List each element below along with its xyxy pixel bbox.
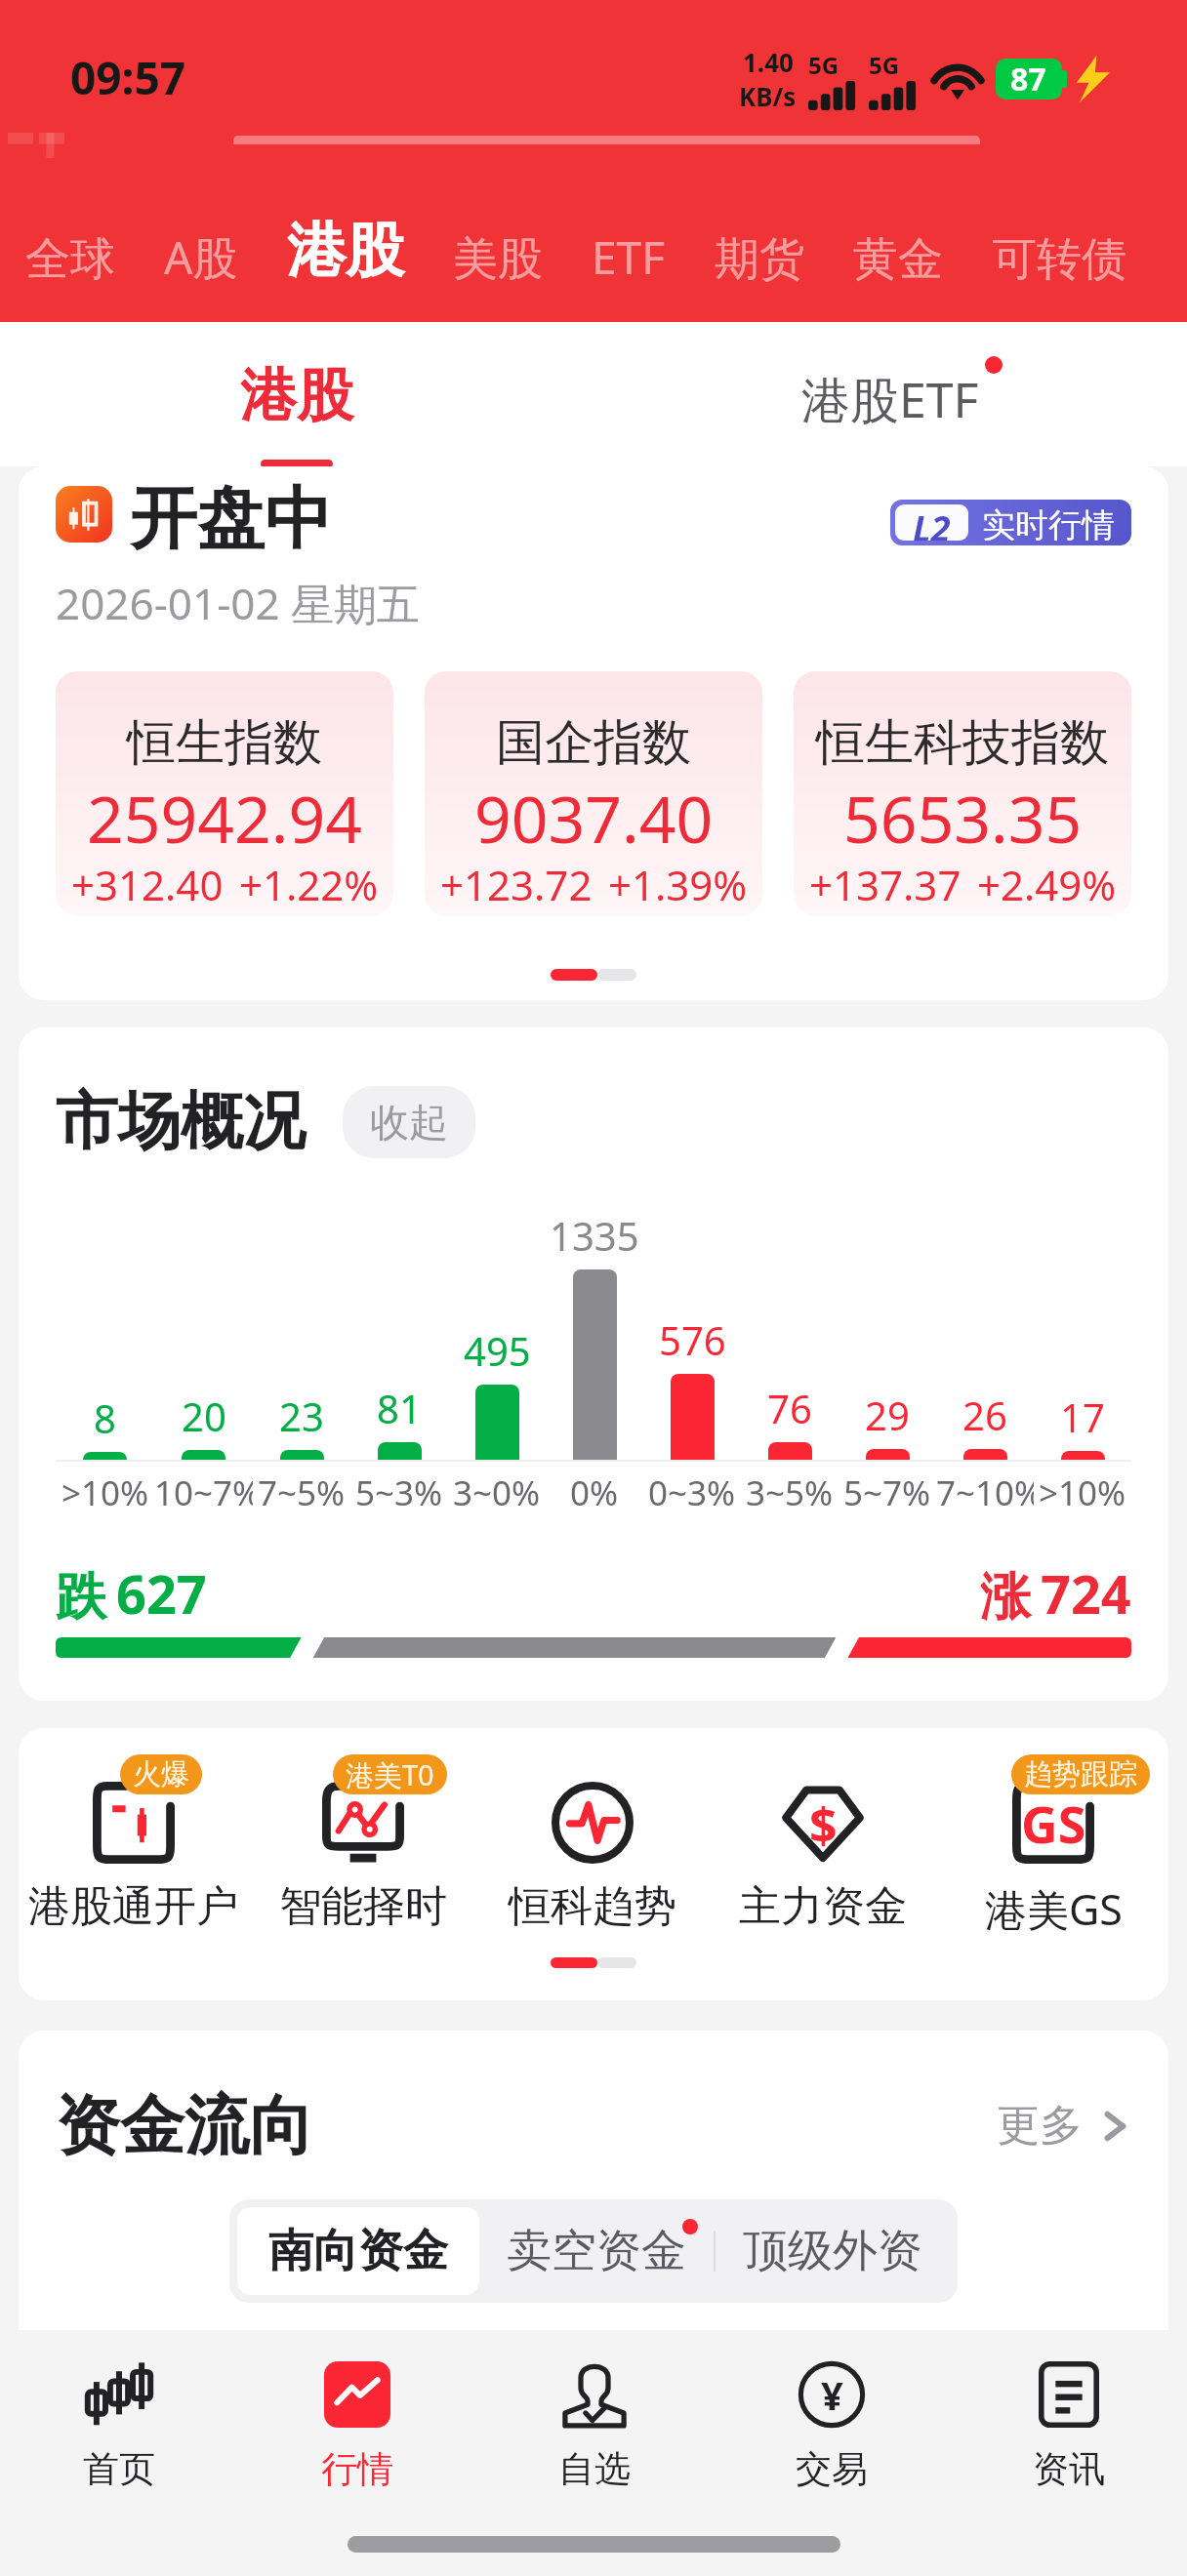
- button[interactable]: 火爆: [19, 1782, 248, 1933]
- staticText: 23: [279, 1389, 324, 1442]
- staticText: +312.40: [71, 857, 224, 912]
- button[interactable]: 顶级外资: [716, 2207, 950, 2295]
- button[interactable]: 行情: [238, 2330, 475, 2506]
- staticText: 港美T0: [346, 1755, 434, 1794]
- staticText: 首页: [83, 2446, 155, 2492]
- staticText: GS: [1021, 1789, 1086, 1858]
- staticText: 3~0%: [453, 1469, 541, 1516]
- staticText: 17: [1060, 1390, 1105, 1443]
- staticText: 可转债: [992, 231, 1126, 288]
- staticText: 1335: [550, 1209, 639, 1262]
- staticText: 国企指数: [496, 712, 691, 774]
- button[interactable]: ¥: [713, 2330, 950, 2506]
- button[interactable]: 搜索: [233, 136, 980, 144]
- staticText: 5G: [869, 49, 900, 81]
- staticText: +137.37: [809, 857, 962, 912]
- staticText: 1.40: [743, 45, 794, 79]
- staticText: 87: [1010, 58, 1046, 101]
- staticText: 港美GS: [985, 1880, 1123, 1938]
- staticText: L2: [913, 504, 951, 541]
- staticText: 火爆: [133, 1756, 189, 1792]
- staticText: 7~10%: [936, 1469, 1034, 1516]
- staticText: 智能择时: [279, 1880, 447, 1933]
- staticText: 全球: [25, 231, 115, 288]
- staticText: 5~3%: [355, 1469, 443, 1516]
- button[interactable]: $: [708, 1782, 938, 1933]
- staticText: 29: [865, 1389, 910, 1441]
- staticText: 卖空资金: [507, 2223, 686, 2279]
- staticText: 市场概况: [56, 1082, 306, 1161]
- staticText: +2.49%: [977, 857, 1117, 912]
- button[interactable]: 港股: [263, 214, 429, 288]
- staticText: 港股: [240, 360, 353, 431]
- staticText: 资讯: [1033, 2446, 1105, 2492]
- button[interactable]: 全球: [1, 231, 140, 288]
- button[interactable]: 期货: [690, 231, 829, 288]
- staticText: 港股: [287, 214, 404, 288]
- staticText: 576: [659, 1313, 726, 1366]
- staticText: 724: [1041, 1557, 1131, 1630]
- staticText: 收起: [370, 1098, 448, 1147]
- button[interactable]: GS: [938, 1782, 1168, 1938]
- button[interactable]: 港美T0: [248, 1782, 477, 1933]
- staticText: 3~5%: [746, 1469, 834, 1516]
- staticText: 81: [377, 1382, 422, 1434]
- staticText: 跌: [56, 1565, 106, 1630]
- button[interactable]: 恒生指数: [56, 671, 393, 915]
- button[interactable]: 资讯: [950, 2330, 1187, 2506]
- staticText: 10~7%: [154, 1469, 253, 1516]
- staticText: ETF: [592, 226, 666, 288]
- staticText: 黄金: [853, 231, 943, 288]
- staticText: 09:57: [70, 47, 186, 108]
- staticText: 开盘中: [130, 477, 332, 562]
- staticText: 25942.94: [87, 774, 362, 862]
- staticText: 恒生指数: [127, 712, 322, 774]
- staticText: 0~3%: [648, 1469, 736, 1516]
- staticText: +1.39%: [608, 857, 748, 912]
- button[interactable]: 恒科趋势: [477, 1782, 708, 1933]
- staticText: 2026-01-02 星期五: [56, 574, 421, 632]
- button[interactable]: 收起: [343, 1086, 475, 1158]
- staticText: 9037.40: [474, 774, 714, 862]
- staticText: >10%: [1039, 1469, 1126, 1516]
- staticText: 资金流向: [56, 2085, 313, 2166]
- staticText: +123.72: [440, 857, 593, 912]
- staticText: $: [809, 1791, 838, 1858]
- button[interactable]: 卖空资金: [479, 2207, 714, 2295]
- staticText: 实时行情: [982, 504, 1115, 541]
- button[interactable]: 恒生科技指数: [794, 671, 1131, 915]
- staticText: >10%: [61, 1469, 149, 1516]
- staticText: 期货: [715, 231, 804, 288]
- staticText: 26: [962, 1389, 1007, 1441]
- staticText: 627: [116, 1557, 207, 1630]
- staticText: 更多: [997, 2099, 1083, 2153]
- staticText: 恒科趋势: [509, 1880, 676, 1933]
- staticText: 5G: [808, 49, 839, 81]
- staticText: 5653.35: [843, 774, 1083, 862]
- staticText: 恒生科技指数: [816, 712, 1109, 774]
- staticText: 自选: [558, 2446, 631, 2492]
- button[interactable]: L2: [890, 500, 1131, 545]
- button[interactable]: 国企指数: [425, 671, 762, 915]
- button[interactable]: 港股: [0, 322, 593, 466]
- staticText: 495: [464, 1324, 531, 1377]
- staticText: 20: [182, 1389, 226, 1442]
- staticText: 0%: [570, 1469, 619, 1516]
- staticText: 行情: [321, 2446, 393, 2492]
- button[interactable]: 港股ETF: [593, 322, 1187, 466]
- staticText: ¥: [821, 2368, 843, 2421]
- button[interactable]: 首页: [0, 2330, 238, 2506]
- staticText: 涨: [980, 1565, 1031, 1630]
- button[interactable]: 黄金: [829, 231, 967, 288]
- button[interactable]: 南向资金: [237, 2207, 479, 2295]
- staticText: 顶级外资: [743, 2223, 922, 2279]
- button[interactable]: 自选: [475, 2330, 713, 2506]
- button[interactable]: ETF: [567, 226, 690, 288]
- button[interactable]: 可转债: [967, 231, 1151, 288]
- staticText: 7~5%: [258, 1469, 346, 1516]
- button[interactable]: A股: [140, 226, 263, 288]
- staticText: 港股ETF: [801, 366, 979, 432]
- button[interactable]: 更多: [997, 2099, 1131, 2153]
- staticText: KB/s: [739, 79, 797, 113]
- button[interactable]: 美股: [429, 231, 567, 288]
